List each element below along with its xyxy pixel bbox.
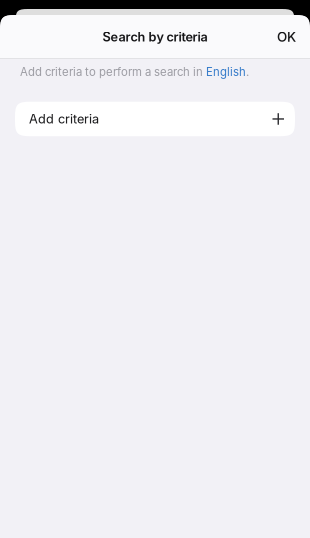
staticText: Add criteria	[29, 111, 99, 127]
staticText: .	[246, 65, 249, 79]
staticText: Add criteria to perform a search in	[20, 65, 206, 79]
button[interactable]: OK	[261, 18, 310, 56]
staticText: OK	[277, 29, 296, 45]
button[interactable]: English	[206, 65, 246, 79]
staticText: English	[206, 65, 246, 79]
staticText: Search by criteria	[102, 29, 207, 45]
button[interactable]: Add criteria	[15, 102, 295, 136]
